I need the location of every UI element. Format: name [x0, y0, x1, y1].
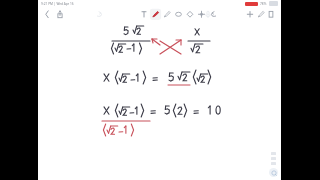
- button[interactable]: Add page: [245, 7, 257, 21]
- button[interactable]: Undo: [90, 7, 106, 21]
- button[interactable]: Edit: [257, 7, 269, 21]
- button[interactable]: Layout: [269, 7, 281, 21]
- button[interactable]: Eraser: [166, 7, 178, 21]
- button[interactable]: Shapes: [190, 7, 202, 21]
- button[interactable]: Highlighter: [142, 7, 154, 21]
- button[interactable]: Redo: [202, 7, 214, 21]
- button[interactable]: [38, 21, 281, 180]
- button[interactable]: Select: [178, 7, 190, 21]
- button[interactable]: Pen: [154, 7, 166, 21]
- staticText: 9:21 PM | Wed Apr 16: [41, 2, 74, 6]
- staticText: 78%: [260, 2, 267, 6]
- button[interactable]: Page options: [269, 168, 278, 177]
- button[interactable]: Share: [54, 7, 68, 21]
- button[interactable]: Back: [38, 7, 54, 21]
